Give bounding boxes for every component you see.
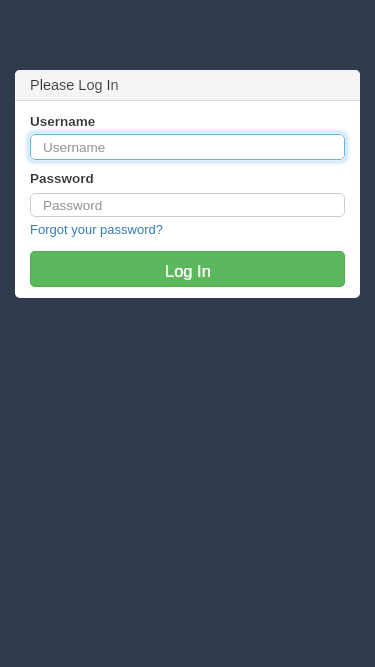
staticText: Forgot your password? xyxy=(30,222,163,237)
staticText: Password xyxy=(30,171,94,186)
staticText: Log In xyxy=(165,262,211,280)
staticText: Please Log In xyxy=(30,77,119,93)
staticText: Username xyxy=(43,140,106,155)
staticText: Username xyxy=(30,114,96,129)
staticText: Password xyxy=(43,198,103,213)
